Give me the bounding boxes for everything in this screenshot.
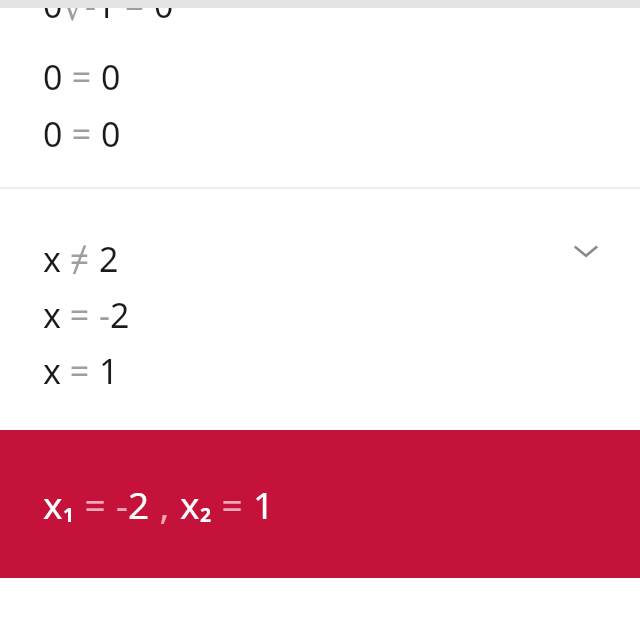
- staticText: x: [43, 292, 61, 338]
- staticText: ≠: [61, 236, 99, 282]
- staticText: 0: [43, 54, 63, 100]
- staticText: 1: [63, 501, 75, 527]
- staticText: =: [116, 8, 154, 28]
- staticText: -: [99, 292, 110, 338]
- staticText: =: [63, 54, 101, 100]
- staticText: =: [75, 479, 116, 529]
- staticText: 2: [128, 479, 150, 529]
- button[interactable]: x: [0, 430, 640, 578]
- staticText: x: [43, 479, 63, 529]
- staticText: 2: [99, 236, 119, 282]
- staticText: ,: [150, 479, 180, 529]
- staticText: √: [63, 8, 85, 28]
- staticText: 0: [101, 111, 121, 157]
- staticText: 0: [101, 54, 121, 100]
- staticText: 2: [200, 501, 212, 527]
- staticText: 0: [43, 8, 63, 28]
- button[interactable]: 0: [0, 8, 640, 187]
- staticText: =: [63, 111, 101, 157]
- staticText: 0: [154, 8, 174, 28]
- staticText: 0: [43, 111, 63, 157]
- staticText: =: [61, 348, 99, 394]
- staticText: =: [212, 479, 253, 529]
- staticText: -: [116, 479, 128, 529]
- staticText: x: [43, 236, 61, 282]
- staticText: -: [85, 8, 96, 28]
- button[interactable]: x: [0, 189, 640, 430]
- staticText: 1: [96, 8, 116, 28]
- staticText: 1: [253, 479, 275, 529]
- staticText: 1: [99, 348, 119, 394]
- staticText: x: [43, 348, 61, 394]
- staticText: 2: [110, 292, 130, 338]
- staticText: x: [180, 479, 200, 529]
- staticText: =: [61, 292, 99, 338]
- button[interactable]: Expand steps: [556, 221, 616, 281]
